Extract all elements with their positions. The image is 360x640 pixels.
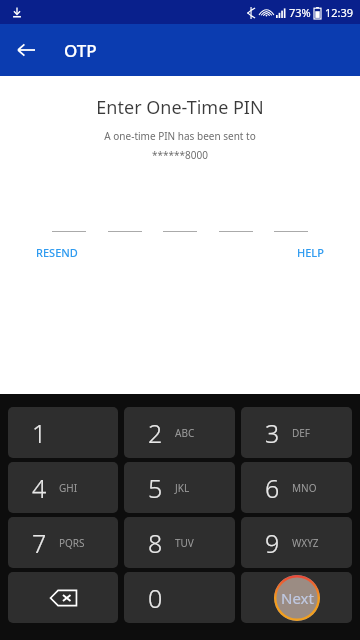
staticText: JKL (175, 481, 190, 495)
staticText: Next (281, 588, 314, 608)
staticText: RESEND (36, 245, 78, 260)
staticText: 2 (148, 416, 163, 450)
button[interactable]: 5 (124, 462, 235, 513)
staticText: 5 (148, 471, 163, 505)
staticText: GHI (59, 481, 78, 495)
button[interactable] (163, 214, 197, 232)
button[interactable]: 3 (241, 407, 352, 458)
button[interactable]: Back (4, 28, 48, 72)
staticText: A one-time PIN has been sent to (0, 129, 360, 143)
staticText: HELP (297, 245, 324, 260)
staticText: PQRS (59, 536, 85, 550)
button[interactable]: 8 (124, 517, 235, 568)
staticText: ******8000 (0, 148, 360, 162)
button[interactable]: 4 (8, 462, 118, 513)
staticText: TUV (175, 536, 194, 550)
button[interactable]: 0 (124, 572, 235, 623)
staticText: 9 (265, 526, 280, 560)
staticText: DEF (292, 426, 311, 440)
button[interactable]: 2 (124, 407, 235, 458)
button[interactable]: RESEND (36, 243, 78, 262)
staticText: 1 (32, 416, 47, 450)
staticText: 0 (148, 581, 163, 615)
button[interactable] (108, 214, 142, 232)
button[interactable]: 9 (241, 517, 352, 568)
staticText: 3 (265, 416, 280, 450)
staticText: WXYZ (292, 536, 319, 550)
button[interactable]: 7 (8, 517, 118, 568)
button[interactable]: 6 (241, 462, 352, 513)
staticText: 73% (289, 5, 311, 20)
button[interactable] (274, 214, 308, 232)
staticText: OTP (64, 39, 97, 62)
button[interactable]: 1 (8, 407, 118, 458)
staticText: 8 (148, 526, 163, 560)
button[interactable]: Backspace (8, 572, 118, 623)
staticText: 6 (265, 471, 280, 505)
button[interactable]: Next (241, 572, 352, 623)
staticText: MNO (292, 481, 317, 495)
button[interactable] (219, 214, 253, 232)
staticText: ABC (175, 426, 195, 440)
staticText: Enter One-Time PIN (0, 95, 360, 120)
button[interactable] (52, 214, 86, 232)
staticText: 4 (32, 471, 47, 505)
button[interactable]: HELP (297, 243, 324, 262)
staticText: 7 (32, 526, 47, 560)
staticText: 12:39 (325, 5, 354, 20)
